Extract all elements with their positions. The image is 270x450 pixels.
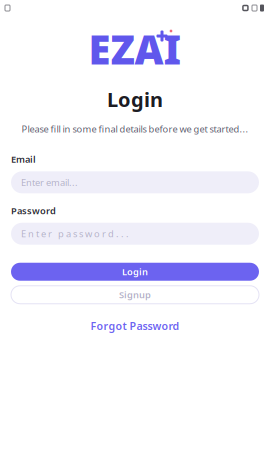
staticText: Login xyxy=(107,86,163,113)
staticText: Password xyxy=(11,204,56,217)
button[interactable]: E n t e r p a s s w o r d . . . xyxy=(11,223,259,245)
staticText: Please fill in some final details before… xyxy=(21,123,248,135)
staticText: Signup xyxy=(119,288,151,301)
staticText: Email xyxy=(11,153,36,165)
button[interactable]: Login xyxy=(11,263,259,281)
staticText: E n t e r p a s s w o r d . . . xyxy=(21,227,129,240)
button[interactable]: Forgot Password xyxy=(82,315,187,337)
staticText: EZAI xyxy=(88,22,181,75)
button[interactable]: Enter email... xyxy=(11,171,259,193)
staticText: Forgot Password xyxy=(90,319,179,333)
staticText: Login xyxy=(122,265,148,278)
button[interactable]: Signup xyxy=(11,286,259,304)
staticText: Enter email... xyxy=(21,176,78,188)
